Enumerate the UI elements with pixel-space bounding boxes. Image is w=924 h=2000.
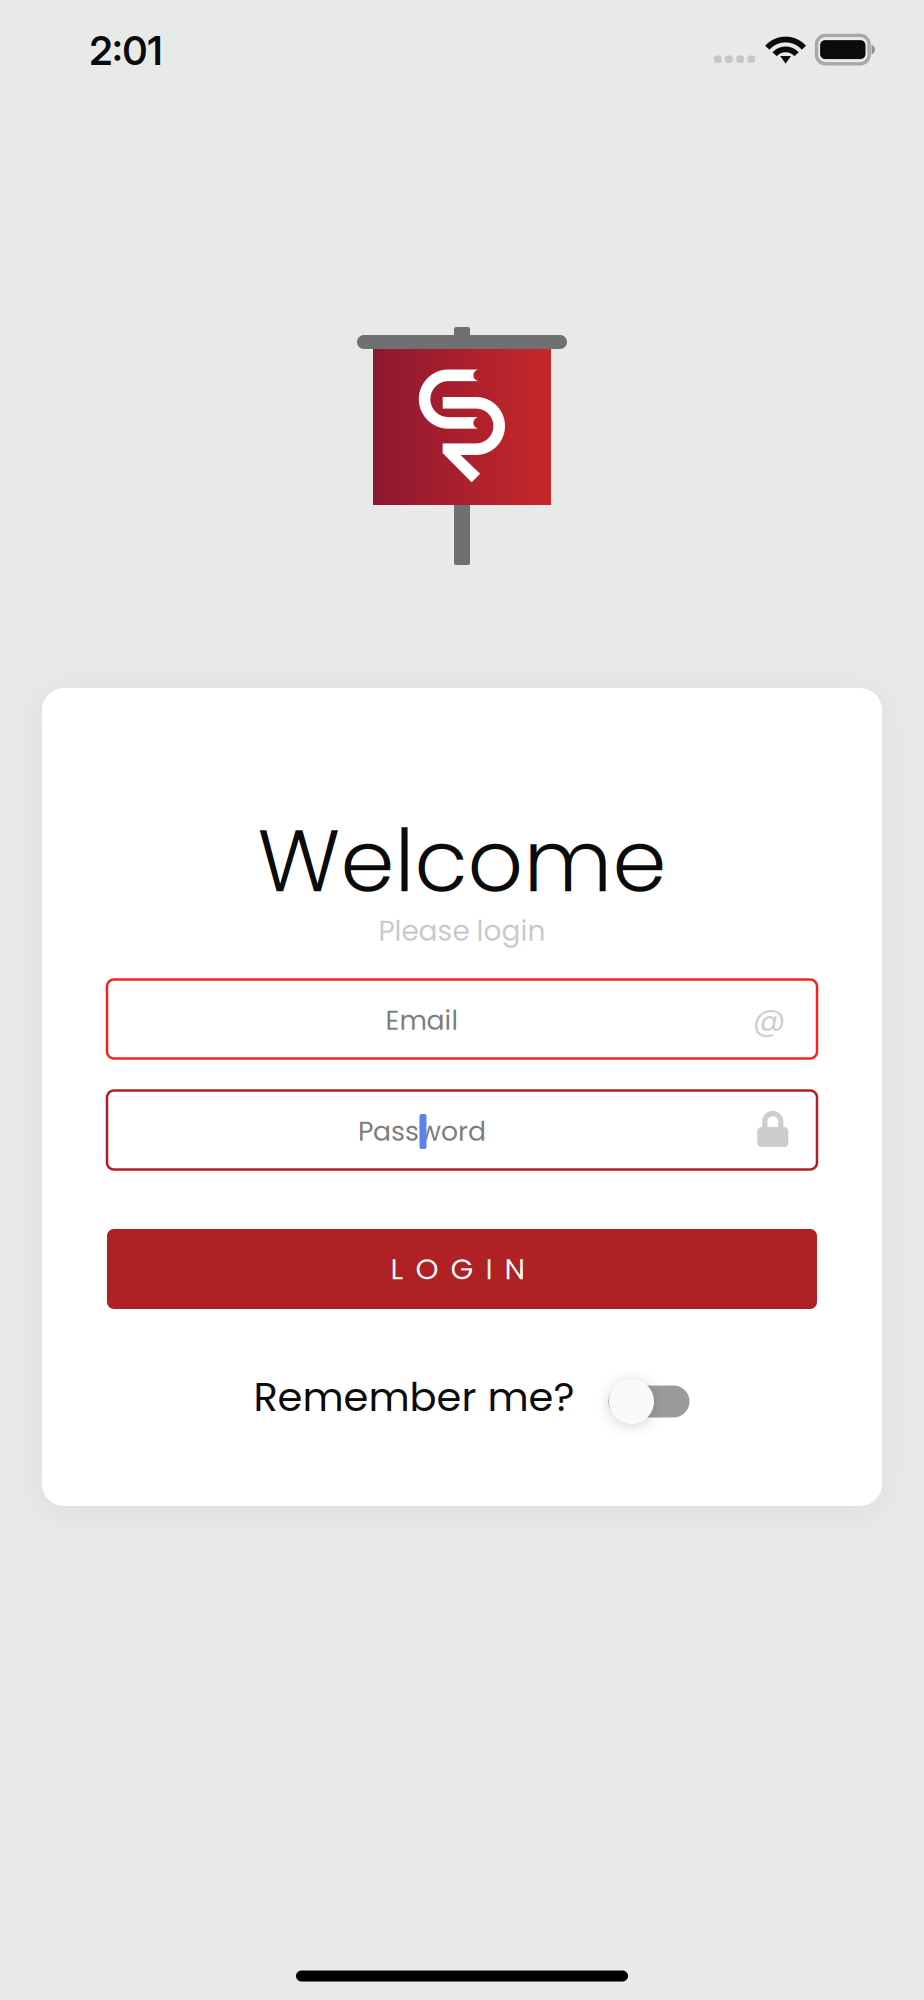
- staticText: Email: [385, 1002, 458, 1039]
- button[interactable]: L O G I N: [107, 1229, 817, 1308]
- staticText: Password: [358, 1113, 486, 1150]
- button[interactable]: Remember me: [605, 1375, 701, 1427]
- staticText: @: [752, 997, 785, 1042]
- staticText: Please login: [378, 911, 545, 951]
- staticText: 2:01: [89, 28, 162, 74]
- staticText: L O G I N: [390, 1248, 525, 1290]
- staticText: Remember me?: [253, 1369, 574, 1425]
- button[interactable]: Email: [107, 979, 817, 1058]
- button[interactable]: Password: [107, 1090, 817, 1169]
- staticText: Welcome: [257, 800, 666, 922]
